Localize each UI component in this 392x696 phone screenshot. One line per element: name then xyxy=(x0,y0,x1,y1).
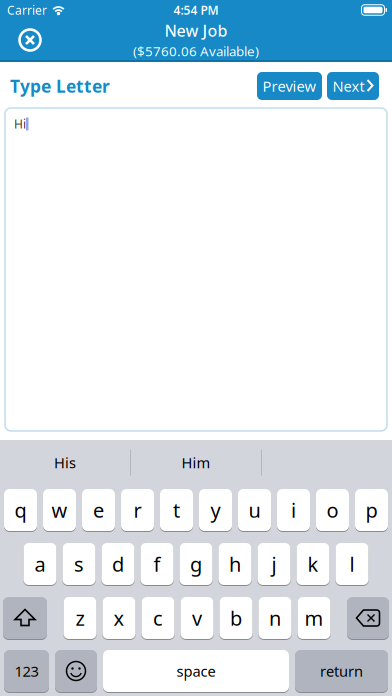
staticText: Preview xyxy=(262,76,316,96)
staticText: c xyxy=(153,605,163,631)
staticText: w xyxy=(51,497,67,523)
staticText: e xyxy=(93,497,104,523)
button[interactable]: p xyxy=(355,489,388,531)
button[interactable]: q xyxy=(4,489,37,531)
staticText: m xyxy=(304,605,323,631)
staticText: Next xyxy=(332,76,364,96)
staticText: h xyxy=(229,551,241,577)
button[interactable]: j xyxy=(257,543,290,585)
staticText: j xyxy=(271,551,276,577)
staticText: Carrier xyxy=(7,2,47,18)
staticText: g xyxy=(190,551,202,577)
staticText: z xyxy=(75,605,84,631)
button[interactable]: z xyxy=(63,597,96,639)
staticText: v xyxy=(192,605,202,631)
button[interactable]: Next xyxy=(327,72,379,100)
button[interactable]: v xyxy=(180,597,213,639)
staticText: p xyxy=(365,497,377,523)
button[interactable]: Shift xyxy=(3,597,47,639)
staticText: His xyxy=(54,453,76,472)
button[interactable]: w xyxy=(43,489,76,531)
button[interactable]: x xyxy=(102,597,135,639)
staticText: New Job xyxy=(164,20,227,41)
button[interactable]: e xyxy=(82,489,115,531)
staticText: Hi xyxy=(14,116,26,132)
staticText: y xyxy=(210,497,220,523)
staticText: o xyxy=(326,497,338,523)
button[interactable]: b xyxy=(219,597,252,639)
staticText: space xyxy=(176,661,215,681)
button[interactable]: m xyxy=(297,597,330,639)
staticText: l xyxy=(349,551,354,577)
staticText: i xyxy=(291,497,296,523)
button[interactable]: i xyxy=(277,489,310,531)
staticText: ($5760.06 Available) xyxy=(133,42,259,60)
staticText: d xyxy=(112,551,124,577)
staticText: 123 xyxy=(14,661,38,681)
staticText: x xyxy=(113,605,124,631)
button[interactable]: space xyxy=(103,650,289,692)
staticText: a xyxy=(34,551,45,577)
button[interactable]: u xyxy=(238,489,271,531)
button[interactable]: n xyxy=(258,597,291,639)
button[interactable]: k xyxy=(296,543,329,585)
button[interactable]: Preview xyxy=(257,72,322,100)
button[interactable]: f xyxy=(140,543,173,585)
button[interactable]: h xyxy=(218,543,251,585)
staticText: q xyxy=(14,497,26,523)
button[interactable]: s xyxy=(62,543,95,585)
staticText: Type Letter xyxy=(10,74,110,97)
staticText: f xyxy=(153,551,160,577)
button[interactable]: a xyxy=(23,543,56,585)
button[interactable]: d xyxy=(101,543,134,585)
button[interactable]: Close xyxy=(16,26,44,54)
button[interactable]: r xyxy=(121,489,154,531)
button[interactable]: Him xyxy=(131,440,261,485)
button[interactable]: return xyxy=(295,650,388,692)
button[interactable]: g xyxy=(179,543,212,585)
button[interactable]: Emoji xyxy=(55,650,97,692)
staticText: u xyxy=(248,497,260,523)
button[interactable]: His xyxy=(0,440,130,485)
staticText: k xyxy=(307,551,318,577)
staticText: b xyxy=(230,605,242,631)
button[interactable]: t xyxy=(160,489,193,531)
staticText: n xyxy=(269,605,281,631)
button[interactable]: Delete xyxy=(347,597,389,639)
staticText: 4:54 PM xyxy=(173,2,218,18)
button[interactable]: o xyxy=(316,489,349,531)
staticText: return xyxy=(320,661,363,681)
staticText: r xyxy=(133,497,141,523)
button[interactable]: c xyxy=(141,597,174,639)
staticText: s xyxy=(74,551,84,577)
button[interactable]: y xyxy=(199,489,232,531)
staticText: t xyxy=(173,497,180,523)
button[interactable]: 123 xyxy=(4,650,49,692)
staticText: Him xyxy=(181,453,210,472)
button[interactable]: l xyxy=(335,543,368,585)
